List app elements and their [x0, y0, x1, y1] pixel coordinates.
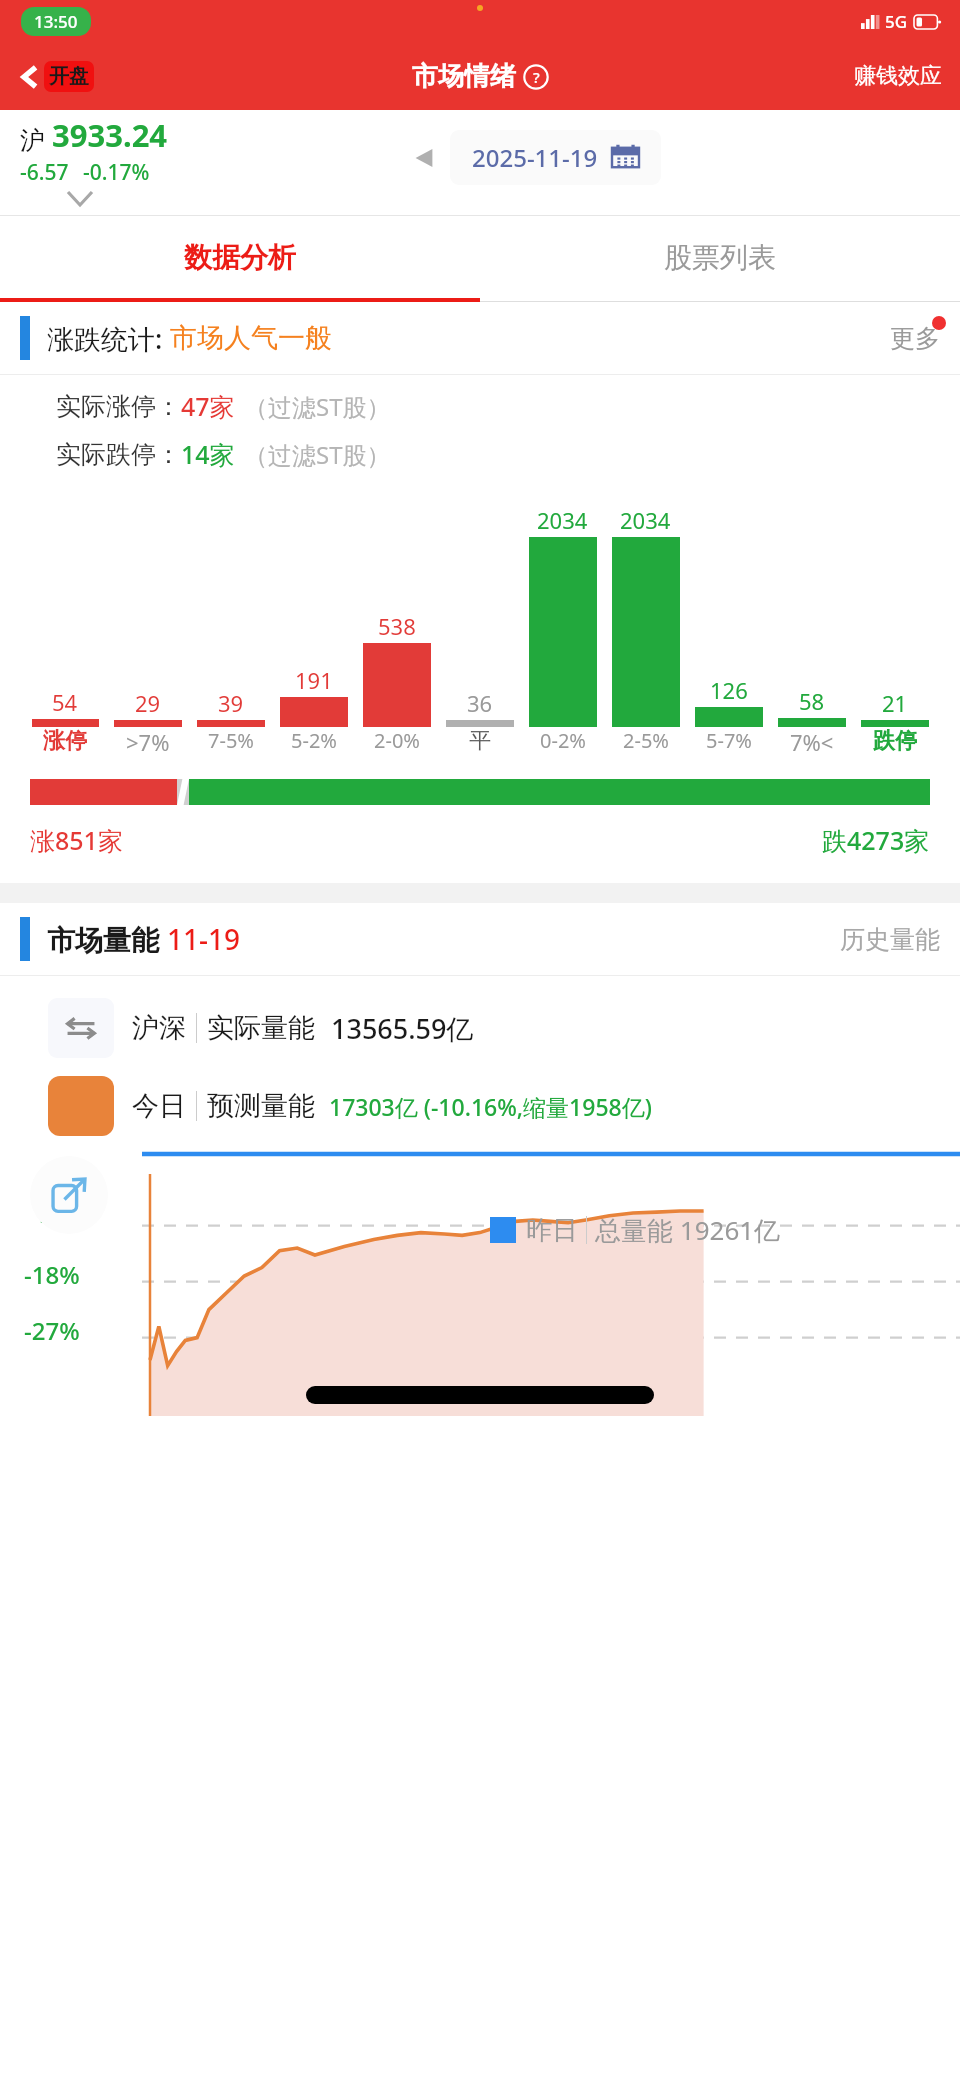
staticText: -0.17%	[83, 158, 150, 187]
staticText: （过滤ST股）	[244, 390, 391, 423]
staticText: 191	[295, 665, 333, 695]
button[interactable]: Back	[12, 55, 102, 98]
button[interactable]: 历史量能	[840, 924, 940, 955]
button[interactable]: 更多	[890, 323, 940, 354]
staticText: 7%<	[790, 727, 834, 757]
staticText: 5G	[885, 10, 908, 33]
staticText: 2034	[537, 505, 588, 535]
staticText: 21	[882, 688, 908, 718]
staticText: 126	[710, 675, 748, 705]
staticText: 跌4273家	[822, 823, 930, 857]
staticText: 涨跌统计:	[47, 320, 170, 357]
button[interactable]: 股票列表	[480, 216, 960, 298]
staticText: 更多	[890, 323, 940, 354]
staticText: （过滤ST股）	[244, 438, 391, 471]
staticText: -27%	[24, 1314, 80, 1347]
staticText: 7-5%	[208, 727, 254, 754]
staticText: 平	[469, 727, 491, 755]
button[interactable]: 今日	[48, 1076, 960, 1136]
staticText: 14家	[181, 437, 235, 471]
staticText: 市场量能	[47, 920, 167, 958]
staticText: 数据分析	[184, 240, 296, 275]
staticText: 涨851家	[30, 823, 123, 857]
staticText: 沪深	[132, 1011, 186, 1045]
staticText: >7%	[126, 727, 170, 757]
button[interactable]: Expand	[20, 187, 960, 209]
staticText: 预测量能	[207, 1089, 315, 1123]
staticText: 历史量能	[840, 924, 940, 955]
staticText: 总量能 19261亿	[595, 1212, 781, 1248]
staticText: 13565.59亿	[331, 1010, 474, 1047]
staticText: 开盘	[49, 64, 89, 89]
staticText: 39	[218, 688, 244, 718]
staticText: -18%	[24, 1258, 80, 1291]
staticText: 2-5%	[623, 727, 669, 754]
staticText: -6.57	[20, 158, 69, 187]
staticText: 47家	[181, 389, 235, 423]
staticText: 3933.24	[52, 114, 168, 156]
staticText: 538	[378, 611, 416, 641]
staticText: 5-2%	[291, 727, 337, 754]
button[interactable]: 2025-11-19	[450, 130, 661, 185]
staticText: 36	[467, 688, 493, 718]
button[interactable]: Help	[523, 64, 549, 90]
button[interactable]: 赚钱效应	[836, 54, 960, 98]
button[interactable]: 数据分析	[0, 216, 480, 298]
staticText: 54	[52, 687, 78, 717]
staticText: 今日	[132, 1089, 186, 1123]
staticText: 市场情绪	[412, 60, 516, 93]
staticText: 沪	[20, 125, 45, 156]
staticText: 2025-11-19	[472, 141, 598, 174]
staticText: 实际跌停：	[56, 439, 181, 470]
staticText: 实际涨停：	[56, 391, 181, 422]
staticText: 11-19	[167, 920, 241, 958]
staticText: 昨日	[526, 1214, 578, 1247]
staticText: ?	[533, 67, 540, 87]
staticText: 29	[135, 688, 161, 718]
staticText: -9%	[40, 1202, 82, 1235]
staticText: 58	[799, 686, 825, 716]
button[interactable]: 沪深	[48, 998, 960, 1058]
staticText: 跌停	[873, 727, 917, 755]
button[interactable]: Share	[30, 1156, 108, 1234]
staticText: 5-7%	[706, 727, 752, 754]
button[interactable]: Previous day	[412, 143, 436, 173]
staticText: 赚钱效应	[854, 62, 942, 90]
staticText: 0-2%	[540, 727, 586, 754]
staticText: 市场人气一般	[170, 321, 332, 355]
staticText: 2034	[620, 505, 671, 535]
staticText: 股票列表	[664, 240, 776, 275]
staticText: 2-0%	[374, 727, 420, 754]
staticText: 涨停	[43, 727, 87, 755]
staticText: 17303亿 (-10.16%,缩量1958亿)	[329, 1091, 652, 1122]
staticText: 13:50	[34, 10, 78, 33]
staticText: 实际量能	[207, 1011, 315, 1045]
